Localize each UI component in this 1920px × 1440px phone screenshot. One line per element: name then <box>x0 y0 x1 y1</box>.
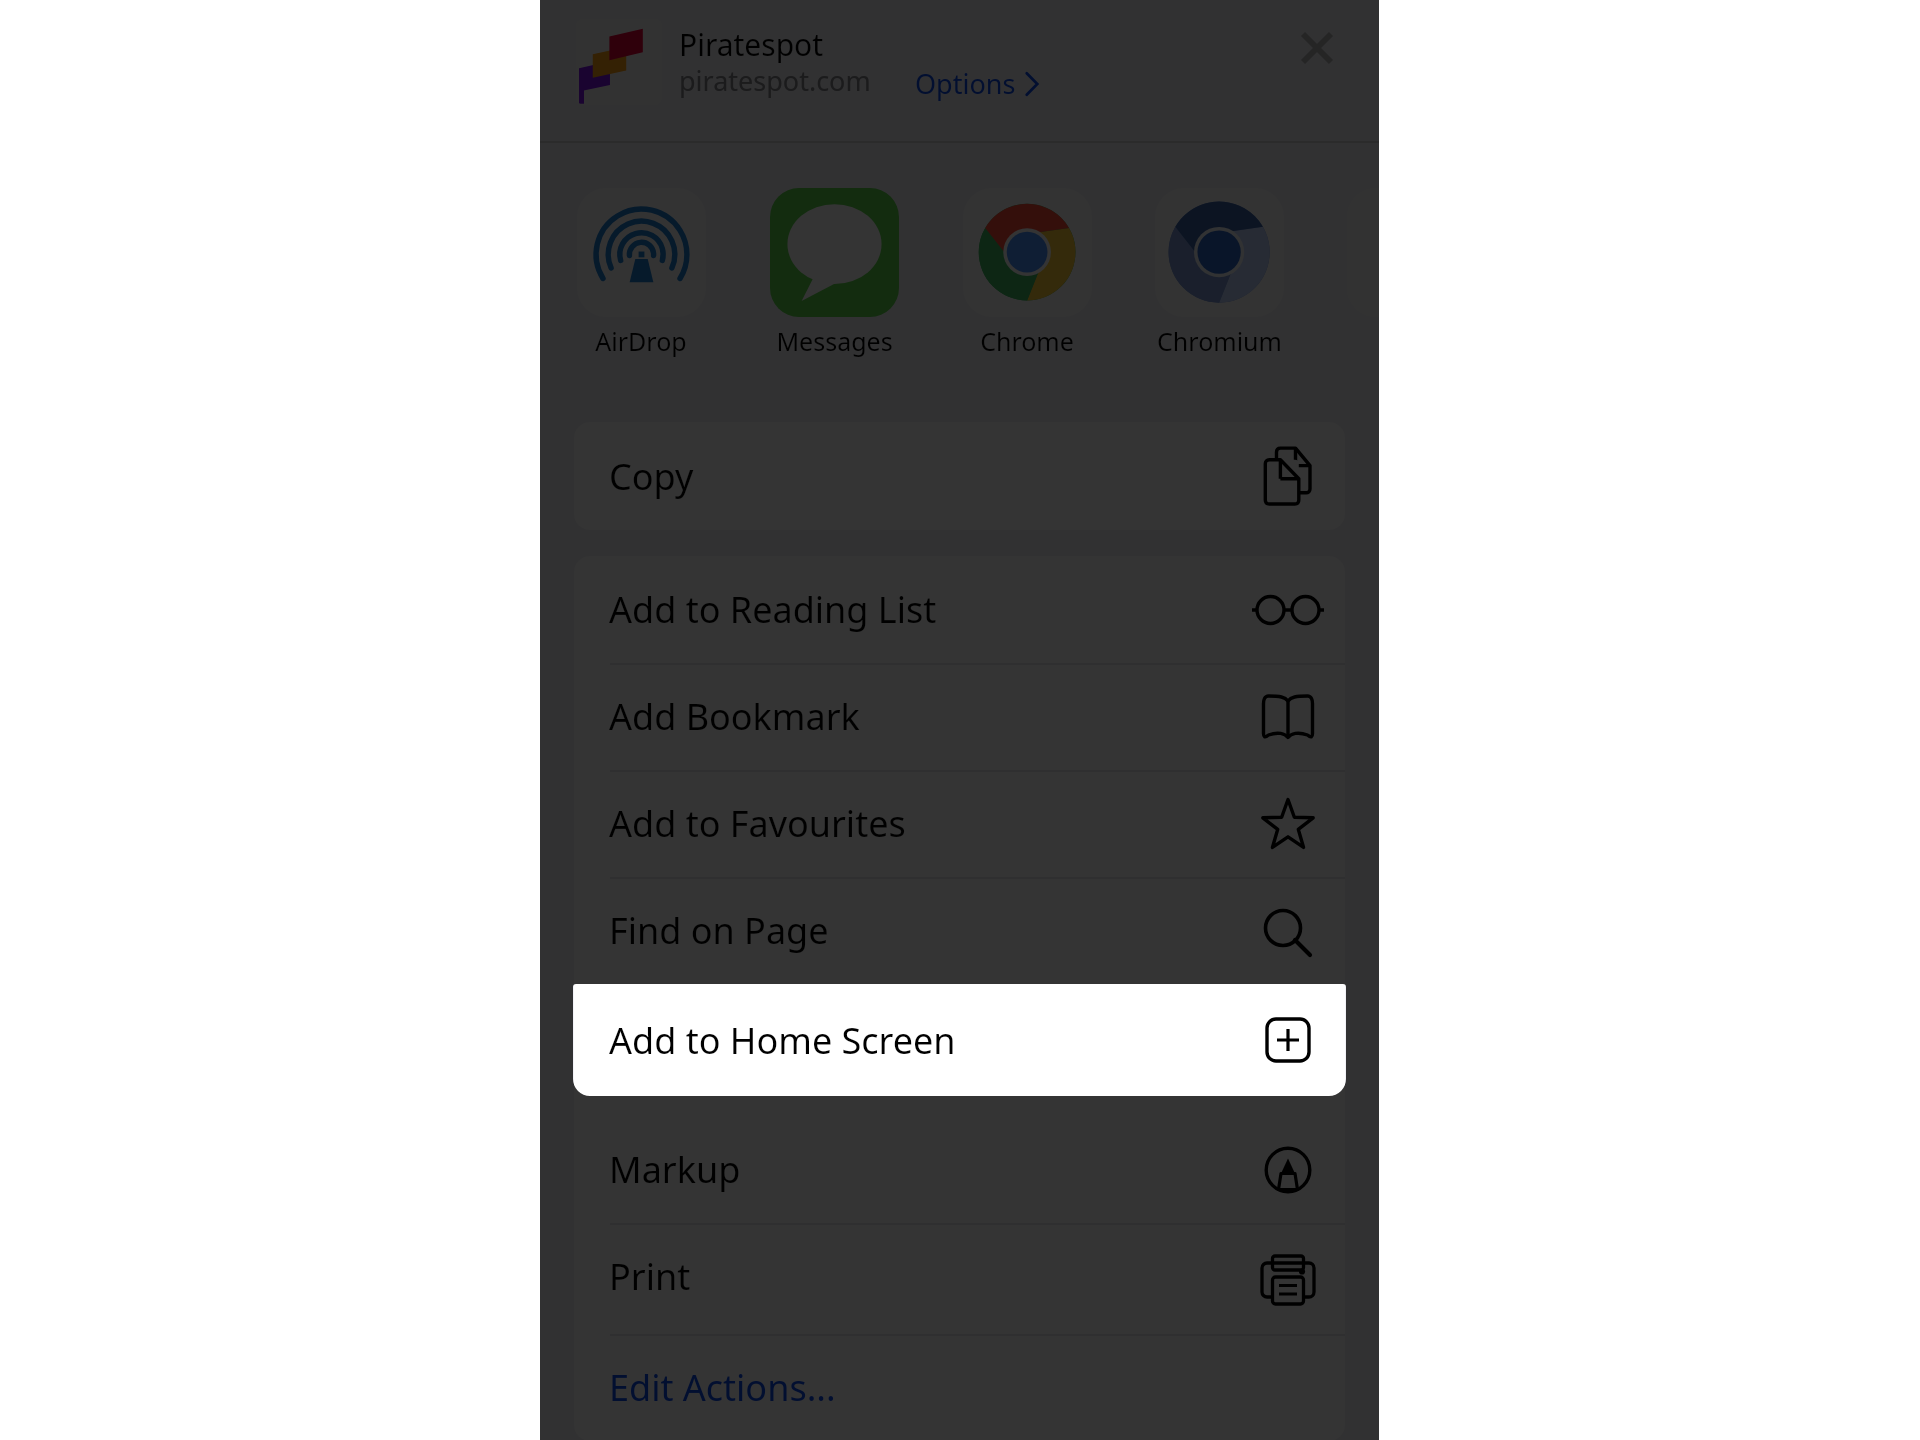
button[interactable]: Options <box>907 58 1052 109</box>
staticText: Add to Favourites <box>609 799 906 848</box>
button[interactable]: Markup <box>574 1116 1345 1223</box>
staticText: Add to Reading List <box>609 585 937 634</box>
button[interactable]: Add to Favourites <box>574 770 1345 877</box>
button[interactable]: AirDrop <box>545 170 737 358</box>
staticText: Messages <box>776 324 893 358</box>
staticText: Find on Page <box>609 906 829 955</box>
button[interactable]: Chromium <box>1123 170 1315 358</box>
button[interactable]: Edit Actions... <box>574 1334 1345 1440</box>
staticText: Piratespot <box>679 24 824 65</box>
button[interactable]: Find on Page <box>574 877 1345 984</box>
staticText: piratespot.com <box>679 62 871 99</box>
staticText: Add to Home Screen <box>609 1016 956 1065</box>
staticText: Print <box>609 1252 691 1301</box>
button[interactable]: Messages <box>738 170 930 358</box>
button[interactable]: Print <box>574 1223 1345 1330</box>
staticText: Edit Actions... <box>609 1363 836 1412</box>
staticText: Markup <box>609 1145 741 1194</box>
button[interactable]: Close <box>1282 13 1352 83</box>
staticText: Options <box>915 65 1016 102</box>
button[interactable]: Add Bookmark <box>574 663 1345 770</box>
button[interactable]: Add to Home Screen <box>574 984 1345 1096</box>
staticText: Add Bookmark <box>609 692 860 741</box>
staticText: AirDrop <box>595 324 687 358</box>
button[interactable]: Add to Reading List <box>574 556 1345 663</box>
button[interactable]: Copy <box>574 422 1345 530</box>
staticText: Chromium <box>1157 324 1282 358</box>
staticText: Chrome <box>980 324 1074 358</box>
staticText: Copy <box>609 452 694 501</box>
button[interactable]: Chrome <box>931 170 1123 358</box>
